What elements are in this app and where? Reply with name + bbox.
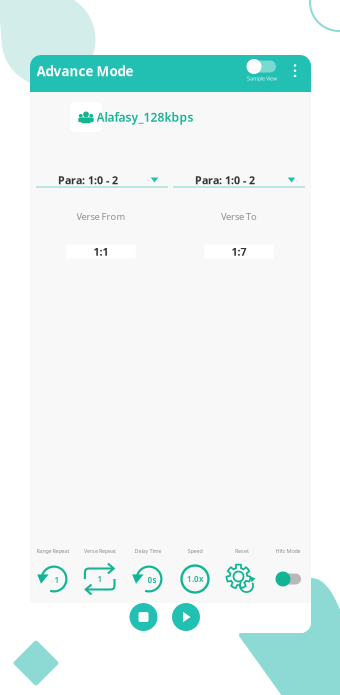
button[interactable]: 1:1 [66,244,135,258]
staticText: Alafasy_128kbps [96,109,193,125]
staticText: Advance Mode [36,62,133,80]
staticText: 1:1 [93,244,108,259]
staticText: Speed [187,547,202,555]
staticText: Reset [235,547,249,555]
button[interactable]: Alafasy_128kbps [68,102,218,134]
staticText: Delay Time [134,547,161,555]
button[interactable]: Speed [180,564,210,594]
button[interactable]: Range Repeat [37,564,69,594]
staticText: Para: 1:0 - 2 [195,173,255,187]
button[interactable]: Reset [226,564,257,594]
staticText: Hifz Mode [275,547,300,555]
button[interactable]: Para: 1:0 - 2 [36,172,168,190]
button[interactable]: Play [172,603,200,631]
button[interactable]: Sample View toggle [238,57,286,84]
staticText: 1:7 [231,244,246,259]
staticText: Verse To [221,210,257,223]
staticText: 1 [54,575,59,585]
button[interactable]: 1:7 [204,244,273,258]
button[interactable]: More options [286,59,304,82]
button[interactable]: Verse Repeat [83,564,116,593]
staticText: Para: 1:0 - 2 [58,173,118,187]
staticText: 1.0x [187,574,203,584]
staticText: 0s [147,575,156,585]
button[interactable]: Stop [129,603,157,631]
staticText: Range Repeat [36,547,69,555]
staticText: Verse From [76,210,125,223]
button[interactable]: Para: 1:0 - 2 [173,172,305,190]
staticText: 1 [97,574,102,584]
button[interactable]: Hifz Mode [275,571,301,587]
button[interactable]: Delay Time [132,564,164,594]
staticText: Sample View [247,75,277,82]
staticText: Verse Repeat [84,547,116,555]
